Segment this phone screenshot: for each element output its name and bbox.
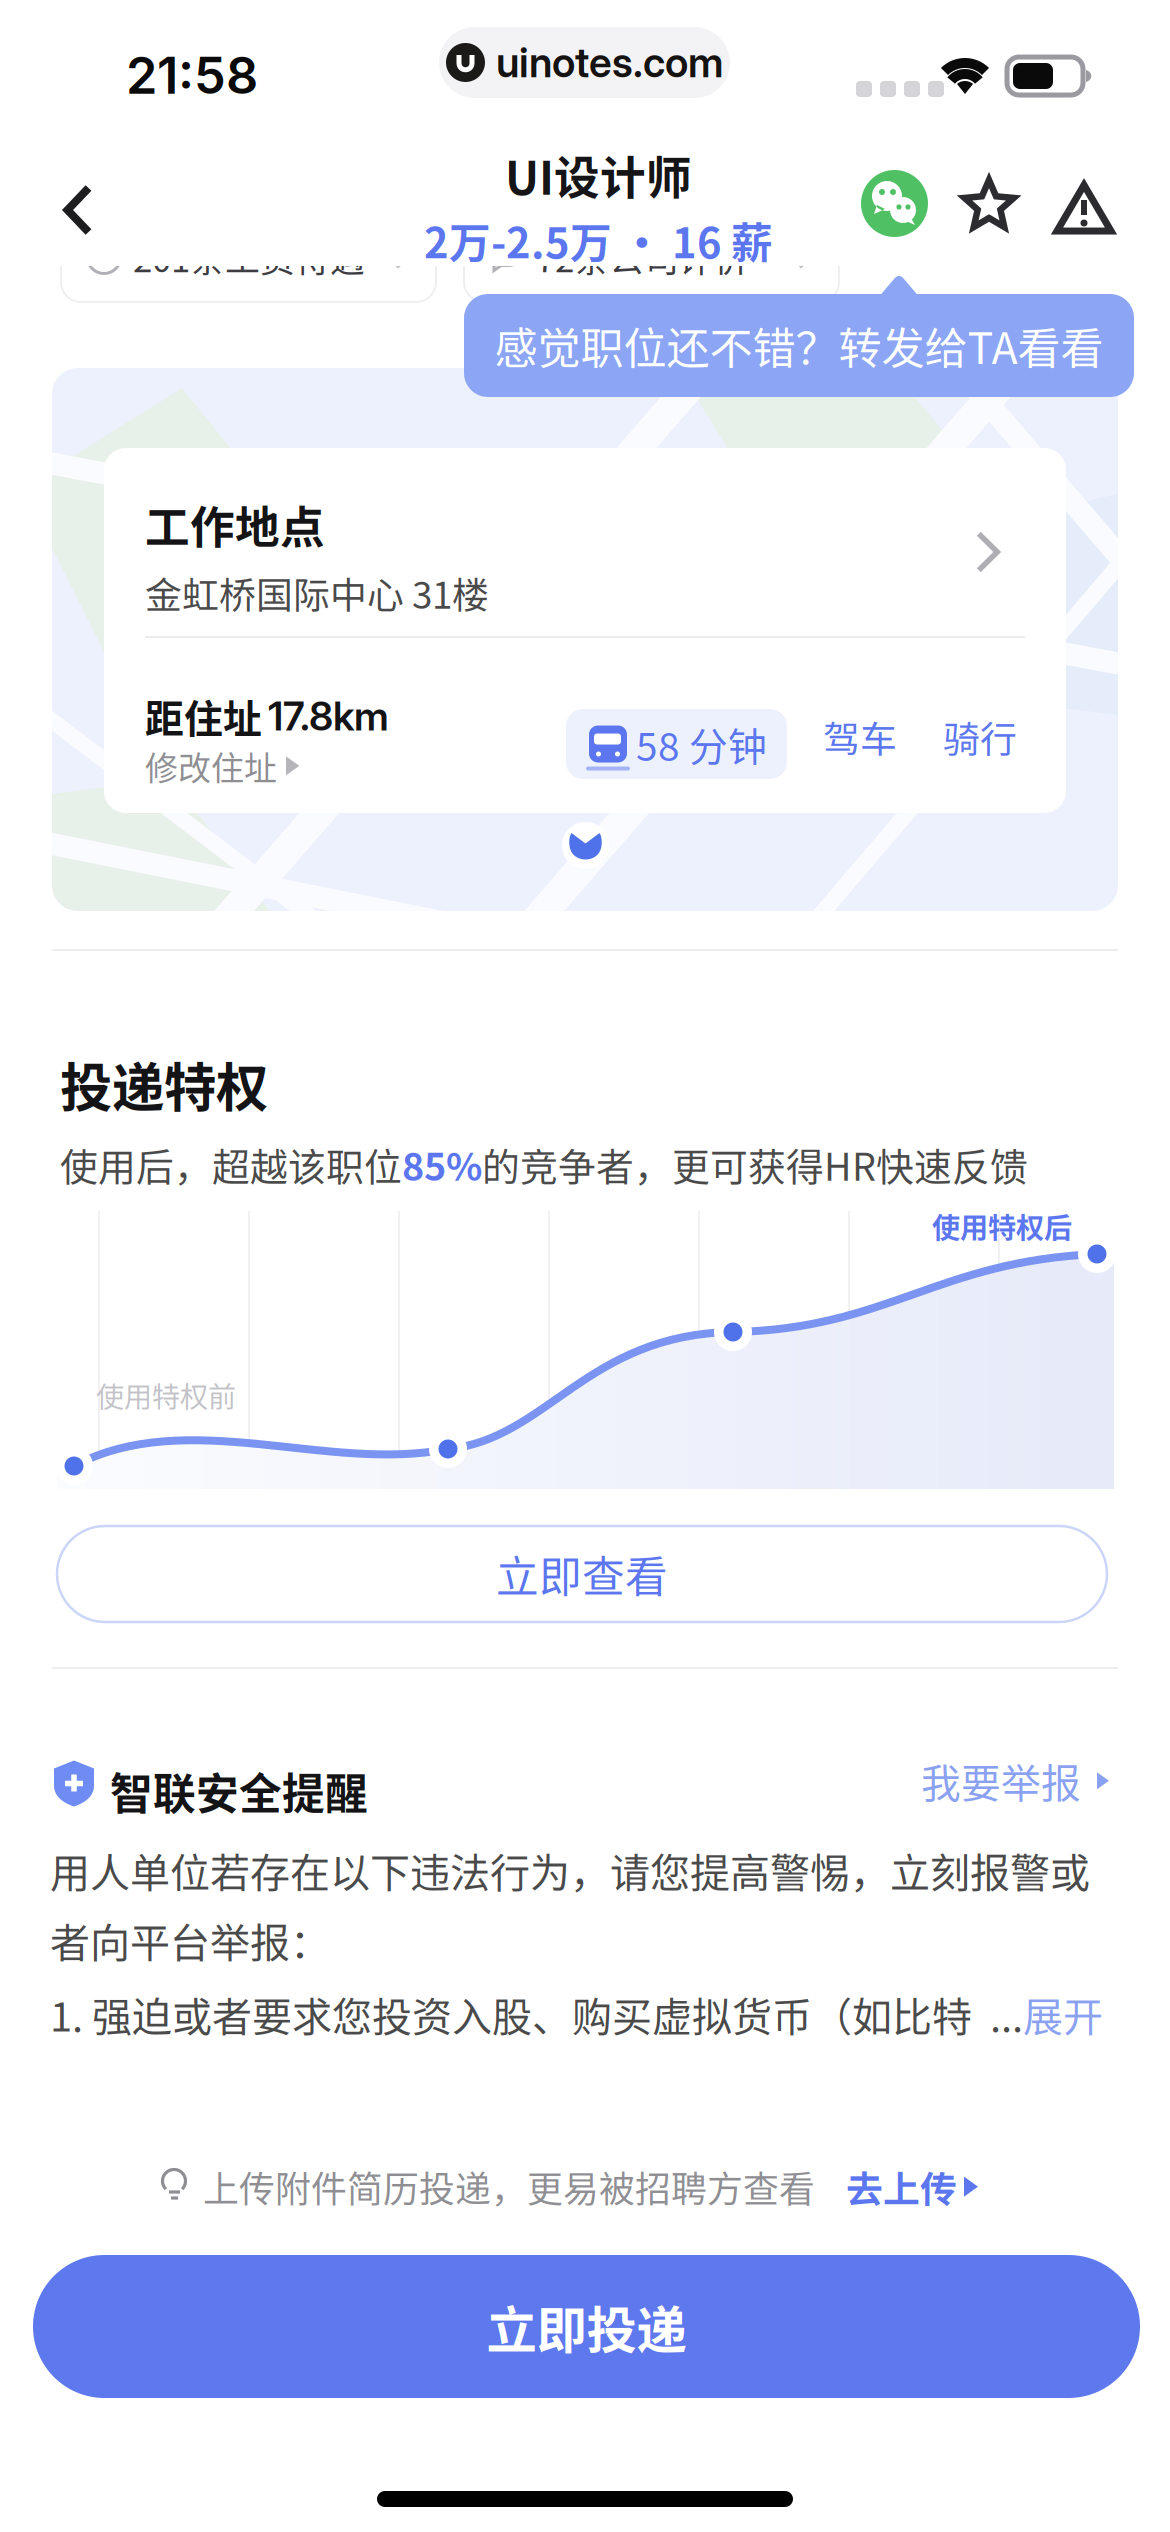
staticText: 感觉职位还不错？转发给TA看看 xyxy=(494,314,1103,377)
button[interactable]: 立即查看 xyxy=(57,1526,1107,1622)
button[interactable]: 举报 xyxy=(1053,179,1115,237)
button[interactable]: 去上传 xyxy=(846,2160,978,2213)
staticText: 立即投递 xyxy=(486,2290,686,2363)
staticText: 21:58 xyxy=(126,45,258,106)
staticText: 智联安全提醒 xyxy=(110,1760,368,1822)
staticText: 使用特权后 xyxy=(932,1206,1072,1247)
staticText: UI设计师 xyxy=(505,142,692,208)
button[interactable]: 我要举报 xyxy=(921,1752,1109,1809)
staticText: 17.8km xyxy=(268,692,389,740)
staticText: 修改住址 xyxy=(145,742,277,790)
button[interactable]: 返回 xyxy=(0,160,92,252)
staticText: 2万-2.5万 · 16 薪 xyxy=(424,210,773,270)
staticText: 工作地点 xyxy=(145,492,325,557)
staticText: 1. 强迫或者要求您投资入股、购买虚拟货币（如比特 ... xyxy=(50,1985,1023,2043)
button[interactable]: 72条公司评价 xyxy=(464,212,839,302)
button[interactable]: 立即投递 xyxy=(33,2255,1140,2398)
staticText: 使用特权前 xyxy=(96,1375,236,1416)
staticText: 驾车 xyxy=(823,710,897,763)
staticText: 立即查看 xyxy=(496,1543,668,1605)
staticText: 投递特权 xyxy=(60,1046,268,1122)
staticText: 85% xyxy=(402,1137,482,1192)
staticText: 距住址 xyxy=(145,688,262,744)
staticText: 用人单位若存在以下违法行为，请您提高警惕，立刻报警或 xyxy=(50,1841,1090,1899)
button[interactable]: 收藏 xyxy=(960,177,1018,235)
staticText: uinotes.com xyxy=(496,38,723,87)
staticText: 者向平台举报： xyxy=(50,1911,330,1969)
button[interactable]: 工作地点 xyxy=(104,448,1066,813)
staticText: 上传附件简历投递，更易被招聘方查看 xyxy=(203,2161,815,2213)
staticText: 的竞争者，更可获得HR快速反馈 xyxy=(482,1137,1028,1192)
staticText: 使用后，超越该职位 xyxy=(60,1137,402,1192)
staticText: 金虹桥国际中心 31楼 xyxy=(145,566,489,619)
staticText: 58 分钟 xyxy=(636,716,767,772)
staticText: 我要举报 xyxy=(921,1752,1081,1809)
button[interactable]: 201条工资待遇 xyxy=(61,212,436,302)
button[interactable]: 微信分享 xyxy=(861,170,928,237)
staticText: 201条工资待遇 xyxy=(133,232,365,282)
staticText: 骑行 xyxy=(943,710,1017,763)
staticText: 去上传 xyxy=(846,2160,957,2213)
staticText: 展开 xyxy=(1023,1985,1103,2043)
staticText: 72条公司评价 xyxy=(536,232,749,282)
